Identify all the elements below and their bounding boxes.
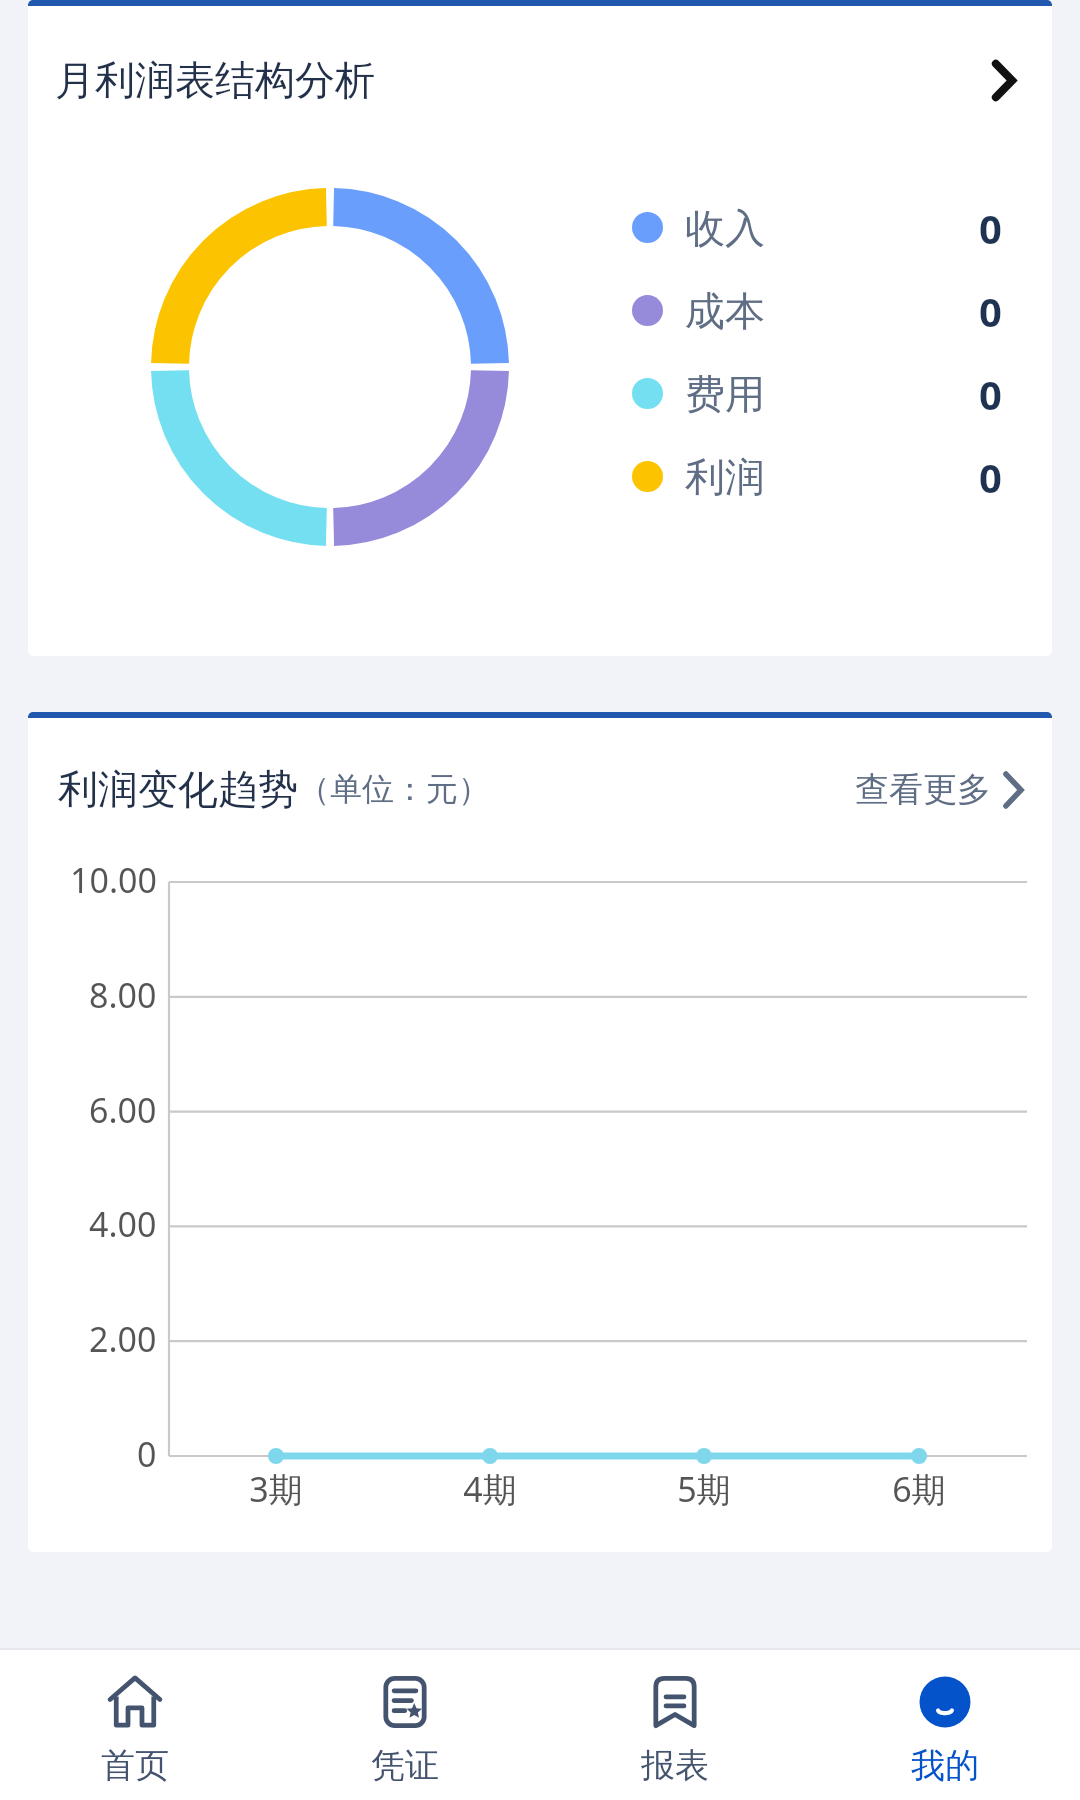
staticText: 3期	[249, 1466, 303, 1512]
button[interactable]: 查看更多	[855, 768, 1024, 811]
staticText: 0	[979, 284, 1002, 338]
other: 查看更多	[1003, 771, 1024, 809]
staticText: 8.00	[89, 972, 157, 1018]
staticText: 0	[137, 1431, 157, 1477]
staticText: 0	[979, 201, 1002, 255]
button[interactable]: 凭证	[270, 1650, 540, 1800]
other: 凭证	[377, 1674, 433, 1730]
staticText: 报表	[641, 1744, 709, 1787]
other: 首页	[107, 1674, 163, 1730]
staticText: 2.00	[89, 1316, 157, 1362]
staticText: 首页	[101, 1744, 169, 1787]
button[interactable]: 首页	[0, 1650, 270, 1800]
staticText: 收入	[685, 203, 765, 253]
staticText: 利润	[685, 452, 765, 502]
other: 查看详情	[992, 60, 1016, 101]
other: 我的	[917, 1674, 973, 1730]
staticText: 查看更多	[855, 768, 991, 811]
staticText: 凭证	[371, 1744, 439, 1787]
staticText: 6期	[892, 1466, 946, 1512]
staticText: 费用	[685, 369, 765, 419]
button[interactable]: 我的	[810, 1650, 1080, 1800]
staticText: 4.00	[89, 1201, 157, 1247]
button[interactable]: 月利润表结构分析	[28, 0, 1052, 160]
staticText: （单位：元）	[298, 769, 490, 809]
staticText: 0	[979, 367, 1002, 421]
button[interactable]: 报表	[540, 1650, 810, 1800]
staticText: 我的	[911, 1744, 979, 1787]
staticText: 10.00	[70, 857, 157, 903]
staticText: 6.00	[89, 1087, 157, 1133]
staticText: 成本	[685, 286, 765, 336]
staticText: 利润变化趋势	[58, 764, 298, 814]
staticText: 4期	[463, 1466, 517, 1512]
other: 报表	[647, 1674, 703, 1730]
staticText: 0	[979, 450, 1002, 504]
staticText: 月利润表结构分析	[55, 55, 375, 105]
staticText: 5期	[677, 1466, 731, 1512]
